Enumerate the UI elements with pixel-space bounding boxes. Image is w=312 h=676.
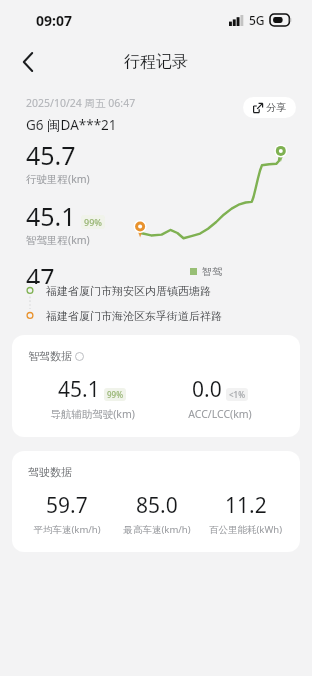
- staticText: ACC/LCC(km): [188, 407, 252, 421]
- staticText: 导航辅助驾驶(km): [50, 407, 135, 421]
- staticText: 2025/10/24 周五 06:47: [26, 96, 136, 110]
- staticText: 智驾里程(km): [26, 233, 90, 247]
- staticText: 行驶里程(km): [26, 172, 90, 186]
- staticText: 45.7: [26, 138, 76, 172]
- button[interactable]: 智驾数据: [12, 335, 300, 437]
- staticText: 45.1: [26, 199, 76, 233]
- staticText: 0.0: [192, 375, 222, 404]
- staticText: 99%: [84, 216, 102, 228]
- staticText: 59.7: [46, 491, 88, 520]
- staticText: 85.0: [136, 491, 178, 520]
- staticText: <1%: [229, 389, 245, 400]
- staticText: 百公里能耗(kWh): [209, 523, 282, 536]
- button[interactable]: Back: [8, 42, 48, 82]
- staticText: 45.1: [58, 375, 100, 404]
- staticText: 99%: [107, 389, 123, 400]
- staticText: 智驾: [202, 265, 222, 278]
- staticText: 5G: [249, 12, 265, 28]
- button[interactable]: 分享: [243, 97, 296, 118]
- other: 说明: [75, 352, 84, 361]
- staticText: 分享: [266, 101, 286, 114]
- staticText: 驾驶数据: [28, 465, 72, 479]
- staticText: 智驾数据: [28, 349, 72, 363]
- staticText: G6 闽DA***21: [26, 116, 117, 134]
- button[interactable]: 驾驶数据: [12, 451, 300, 552]
- staticText: 平均车速(km/h): [33, 523, 101, 536]
- staticText: 最高车速(km/h): [123, 523, 191, 536]
- staticText: 福建省厦门市海沧区东孚街道后祥路: [46, 309, 222, 323]
- staticText: 行程记录: [124, 52, 188, 72]
- staticText: 47: [26, 260, 55, 284]
- staticText: 09:07: [36, 11, 72, 30]
- staticText: 11.2: [225, 491, 267, 520]
- staticText: 福建省厦门市翔安区内厝镇西塘路: [46, 284, 211, 298]
